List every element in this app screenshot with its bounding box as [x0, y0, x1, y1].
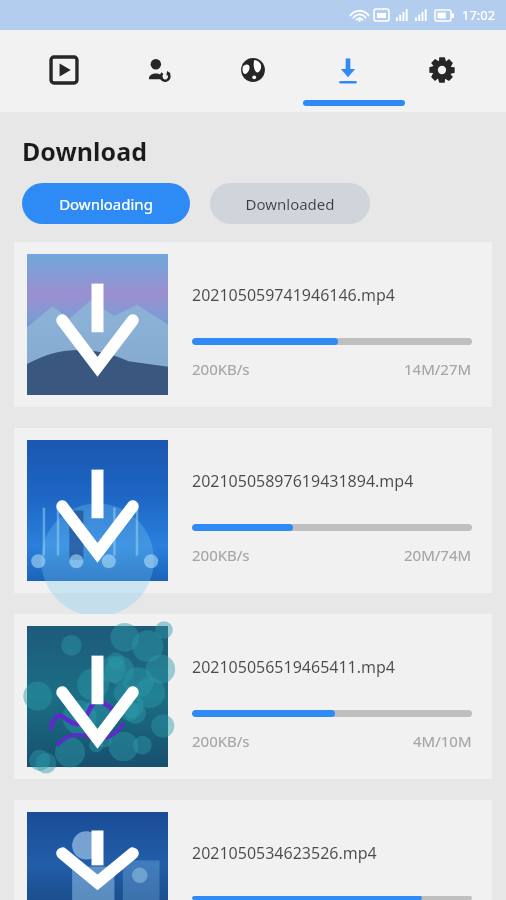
staticText: 202105059741946146.mp4	[192, 284, 395, 306]
staticText: 2021050534623526.mp4	[192, 842, 377, 864]
staticText: 20210505897619431894.mp4	[192, 470, 414, 492]
staticText: 200KB/s	[192, 731, 250, 751]
staticText: 4M/10M	[413, 731, 472, 751]
button[interactable]: Downloads	[317, 52, 379, 102]
staticText: 200KB/s	[192, 359, 250, 379]
button[interactable]: Video player	[33, 52, 95, 102]
staticText: Downloaded	[245, 194, 335, 214]
staticText: 202105056519465411.mp4	[192, 656, 395, 678]
button[interactable]: Browser	[222, 52, 284, 102]
button[interactable]: Profile sync	[127, 52, 189, 102]
staticText: 14M/27M	[404, 359, 472, 379]
button[interactable]: 202105056519465411.mp4	[14, 614, 492, 779]
button[interactable]: 2021050534623526.mp4	[14, 800, 492, 900]
button[interactable]: 20210505897619431894.mp4	[14, 428, 492, 593]
staticText: Download	[22, 134, 147, 168]
button[interactable]: 202105059741946146.mp4	[14, 242, 492, 407]
staticText: Downloading	[59, 194, 153, 214]
button[interactable]: Downloading	[22, 183, 190, 224]
staticText: 200KB/s	[192, 545, 250, 565]
button[interactable]: Settings	[411, 52, 473, 102]
button[interactable]: Downloaded	[210, 183, 370, 224]
staticText: 20M/74M	[404, 545, 472, 565]
staticText: 17:02	[462, 6, 496, 24]
